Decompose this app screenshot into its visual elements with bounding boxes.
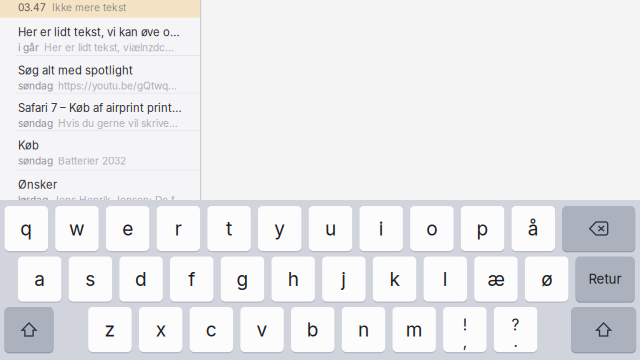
- staticText: k: [389, 267, 399, 291]
- button[interactable]: r: [157, 206, 200, 251]
- staticText: Safari 7 – Køb af airprint print…: [18, 101, 182, 115]
- button[interactable]: y: [258, 206, 301, 251]
- staticText: s: [85, 267, 95, 291]
- staticText: g: [236, 267, 248, 291]
- staticText: Køb: [18, 139, 39, 152]
- button[interactable]: l: [423, 256, 467, 301]
- staticText: u: [325, 217, 336, 240]
- staticText: f: [188, 267, 195, 291]
- button[interactable]: g: [221, 256, 264, 301]
- staticText: ,: [463, 332, 467, 351]
- button[interactable]: p: [461, 206, 504, 251]
- staticText: y: [274, 217, 285, 240]
- staticText: i går: [18, 41, 39, 54]
- staticText: q: [20, 217, 32, 240]
- staticText: !: [463, 316, 467, 334]
- button[interactable]: f: [170, 256, 213, 301]
- staticText: https://youtu.be/gQtwq…: [58, 80, 177, 92]
- button[interactable]: t: [207, 206, 251, 251]
- staticText: Hvis du gerne vil skrive…: [58, 117, 178, 129]
- button[interactable]: u: [309, 206, 352, 251]
- staticText: søndag: [18, 80, 53, 92]
- staticText: 03.47: [18, 1, 46, 14]
- staticText: Ønsker: [18, 178, 57, 192]
- staticText: søndag: [18, 117, 53, 129]
- staticText: a: [34, 267, 45, 291]
- button[interactable]: j: [322, 256, 366, 301]
- button[interactable]: z: [88, 307, 132, 352]
- button[interactable]: Shift: [571, 307, 636, 352]
- staticText: c: [206, 318, 217, 341]
- staticText: z: [104, 318, 115, 341]
- staticText: ø: [541, 267, 552, 291]
- button[interactable]: Safari 7 – Køb af airprint print…: [0, 94, 200, 131]
- staticText: r: [175, 217, 182, 240]
- staticText: o: [426, 217, 437, 240]
- staticText: j: [341, 267, 346, 291]
- staticText: Batterier 2032: [58, 155, 126, 167]
- button[interactable]: Shift: [4, 307, 53, 352]
- staticText: Her er lidt tekst, viælnzdc…: [44, 41, 174, 54]
- staticText: d: [135, 267, 147, 291]
- button[interactable]: h: [271, 256, 315, 301]
- staticText: .: [513, 332, 517, 351]
- button[interactable]: Søg alt med spotlight: [0, 56, 200, 94]
- staticText: m: [406, 318, 423, 341]
- button[interactable]: i: [359, 206, 403, 251]
- button[interactable]: e: [106, 206, 149, 251]
- button[interactable]: Retur: [576, 256, 635, 301]
- staticText: b: [307, 318, 319, 341]
- staticText: p: [476, 217, 488, 240]
- staticText: Jens Henrik Jensen: De f…: [53, 194, 183, 206]
- button[interactable]: k: [373, 256, 416, 301]
- button[interactable]: å: [511, 206, 555, 251]
- button[interactable]: ?: [494, 307, 537, 352]
- button[interactable]: m: [392, 307, 436, 352]
- staticText: lørdag: [18, 194, 48, 206]
- button[interactable]: æ: [474, 256, 518, 301]
- staticText: x: [156, 318, 166, 341]
- button[interactable]: x: [139, 307, 182, 352]
- staticText: e: [122, 217, 133, 240]
- staticText: æ: [487, 267, 504, 291]
- staticText: søndag: [18, 155, 53, 167]
- button[interactable]: b: [291, 307, 334, 352]
- button[interactable]: Køb: [0, 131, 200, 170]
- button[interactable]: Her er lidt tekst, vi kan øve o…: [0, 18, 200, 56]
- staticText: å: [528, 217, 539, 240]
- button[interactable]: o: [410, 206, 454, 251]
- staticText: Ikke mere tekst: [52, 1, 126, 14]
- staticText: v: [257, 318, 268, 341]
- staticText: t: [226, 217, 232, 240]
- button[interactable]: a: [18, 256, 61, 301]
- button[interactable]: d: [119, 256, 163, 301]
- button[interactable]: Ønsker: [0, 170, 200, 208]
- button[interactable]: q: [4, 206, 48, 251]
- staticText: n: [358, 318, 369, 341]
- staticText: w: [69, 217, 85, 240]
- staticText: i: [379, 217, 384, 240]
- staticText: h: [288, 267, 299, 291]
- button[interactable]: ø: [525, 256, 568, 301]
- button[interactable]: v: [240, 307, 284, 352]
- button[interactable]: 03.47: [0, 0, 200, 18]
- staticText: Søg alt med spotlight: [18, 64, 133, 77]
- button[interactable]: n: [342, 307, 385, 352]
- button[interactable]: !: [443, 307, 487, 352]
- button[interactable]: w: [55, 206, 99, 251]
- staticText: Retur: [589, 271, 622, 287]
- staticText: l: [443, 267, 448, 291]
- button[interactable]: Delete: [562, 206, 635, 251]
- staticText: ?: [511, 316, 519, 334]
- button[interactable]: s: [69, 256, 112, 301]
- staticText: Her er lidt tekst, vi kan øve o…: [18, 25, 180, 39]
- button[interactable]: c: [190, 307, 233, 352]
